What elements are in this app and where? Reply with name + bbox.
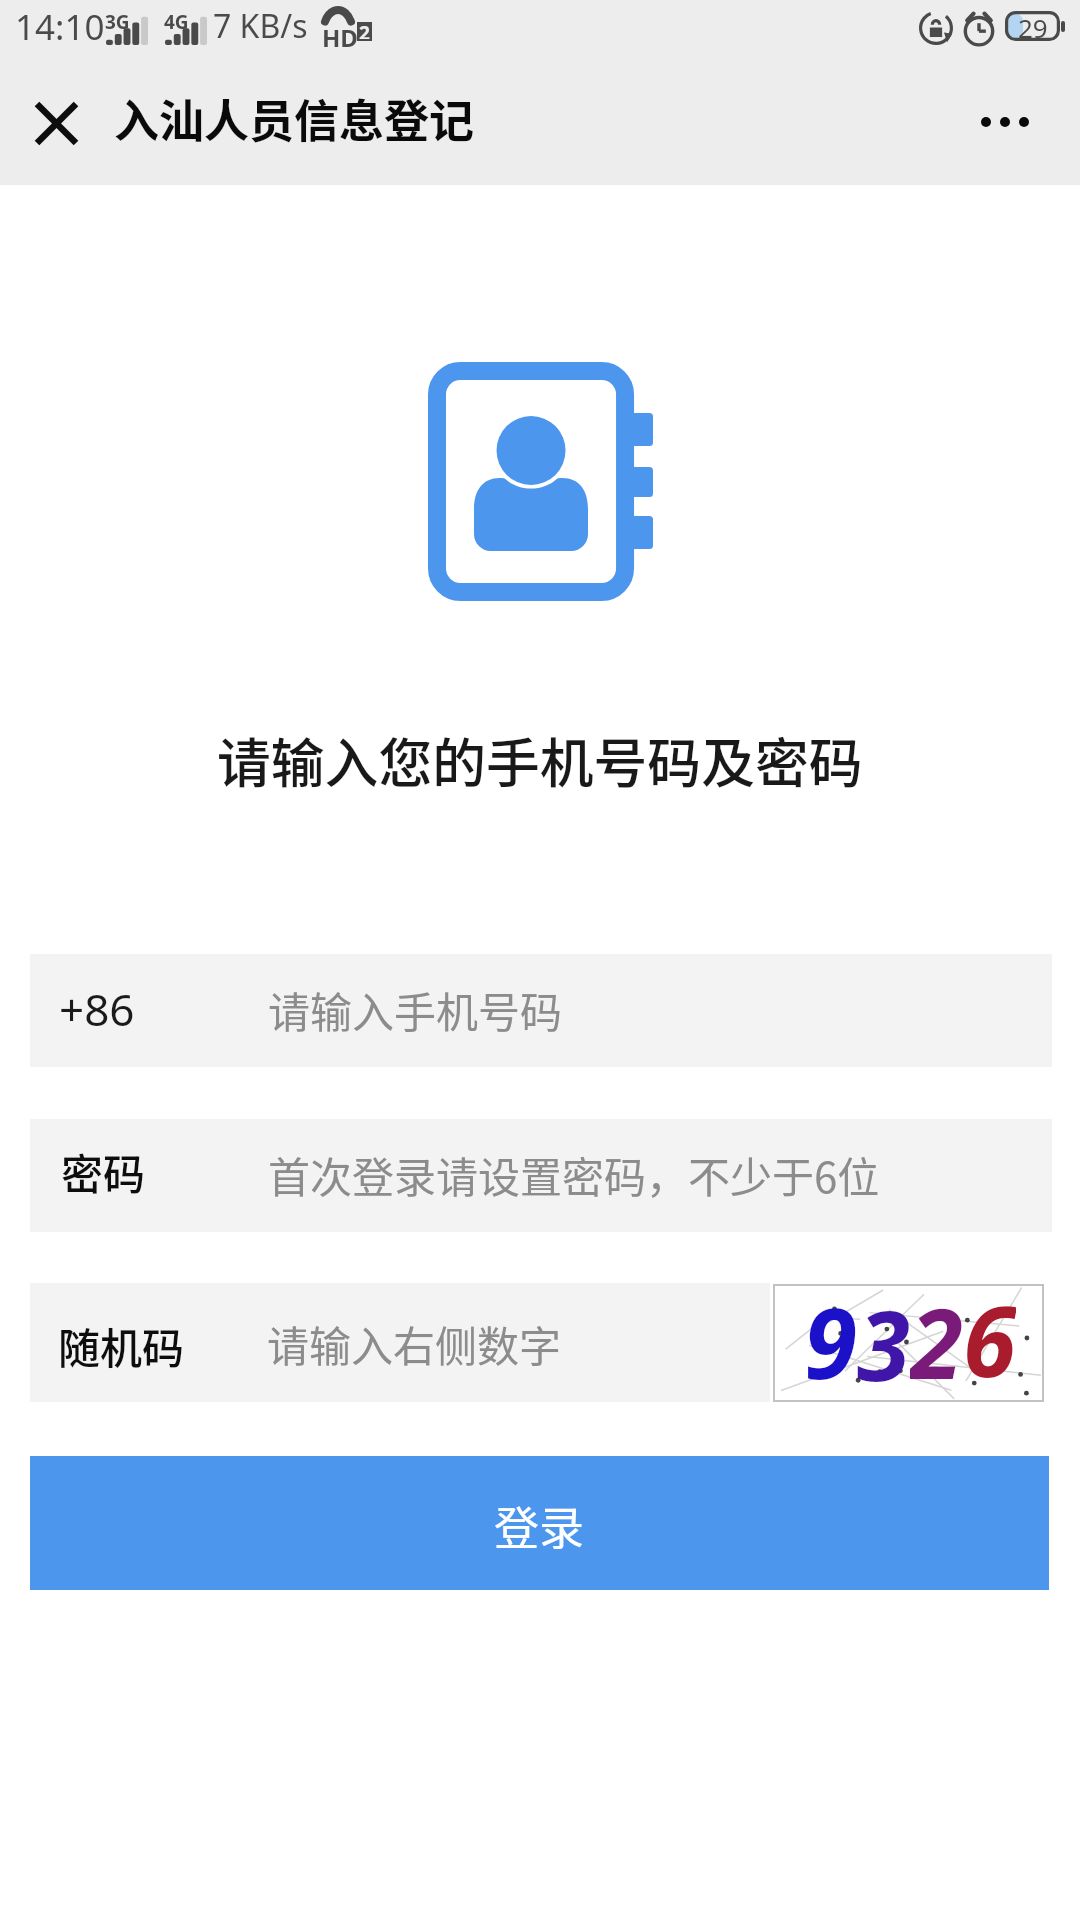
button[interactable]: 随机码	[30, 1283, 770, 1402]
button[interactable]: 密码	[30, 1119, 1052, 1232]
button[interactable]: More options	[955, 62, 1055, 185]
staticText: 请输入右侧数字	[267, 1313, 562, 1374]
staticText: 3G	[105, 9, 130, 35]
button[interactable]: Refresh captcha	[774, 1285, 1043, 1401]
staticText: 29	[1018, 10, 1048, 40]
staticText: 请输入手机号码	[268, 979, 563, 1040]
staticText: HD	[322, 21, 358, 54]
other: Rotation lock	[919, 11, 953, 45]
staticText: 7 KB/s	[213, 4, 308, 48]
staticText: 2	[359, 20, 370, 39]
staticText: 6	[963, 1274, 1016, 1390]
staticText: 4G	[164, 9, 189, 35]
staticText: 密码	[61, 1141, 146, 1202]
staticText: 3	[857, 1278, 910, 1394]
button[interactable]: Close	[6, 62, 106, 185]
button[interactable]: +86	[30, 954, 1052, 1067]
staticText: 登录	[494, 1493, 585, 1558]
button[interactable]: 登录	[30, 1456, 1049, 1590]
staticText: 请输入您的手机号码及密码	[217, 721, 863, 799]
staticText: 入汕人员信息登记	[114, 86, 475, 151]
staticText: 2	[910, 1276, 963, 1392]
staticText: 14:10	[15, 3, 105, 51]
other: Alarm	[961, 11, 997, 47]
staticText: 首次登录请设置密码，不少于6位	[268, 1144, 880, 1205]
staticText: +86	[59, 979, 135, 1039]
staticText: 随机码	[58, 1315, 185, 1376]
staticText: 9	[804, 1276, 857, 1392]
